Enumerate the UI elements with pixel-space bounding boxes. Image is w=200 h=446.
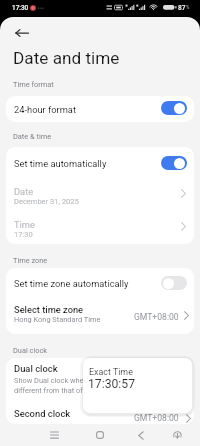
button[interactable]: Date xyxy=(6,179,194,212)
staticText: GMT+08:00 xyxy=(134,413,179,423)
staticText: Date xyxy=(14,186,34,197)
button[interactable]: 24-hour format xyxy=(6,96,194,122)
button[interactable]: Set time zone automatically xyxy=(6,268,194,298)
button[interactable]: Set time automatically xyxy=(6,147,194,179)
button[interactable]: Back xyxy=(131,425,151,445)
staticText: Dual clock xyxy=(13,346,48,355)
button[interactable]: Back xyxy=(11,22,32,43)
staticText: Select time zone xyxy=(14,304,84,315)
button[interactable]: Off xyxy=(161,276,187,290)
button[interactable]: Screenshot xyxy=(167,425,187,445)
staticText: Hong Kong Standard Time xyxy=(14,315,101,324)
staticText: 24-hour format xyxy=(14,104,76,115)
button[interactable]: Exact Time xyxy=(83,358,192,413)
staticText: Time xyxy=(14,219,35,230)
button[interactable]: Second clock xyxy=(6,404,194,424)
button[interactable]: Home xyxy=(90,425,110,445)
staticText: 17:30 xyxy=(12,4,29,12)
staticText: Time zone xyxy=(13,256,48,265)
staticText: Time format xyxy=(13,80,54,89)
staticText: Dual clock xyxy=(14,363,58,374)
button[interactable]: Time xyxy=(6,212,194,244)
button[interactable]: Select time zone xyxy=(6,298,194,334)
button[interactable]: Dual clock xyxy=(6,358,194,404)
staticText: Date & time xyxy=(13,132,52,141)
staticText: % xyxy=(186,5,190,10)
button[interactable]: Recents xyxy=(44,425,64,445)
staticText: GMT+08:00 xyxy=(134,312,179,322)
staticText: Set time automatically xyxy=(14,158,107,169)
staticText: 17:30 xyxy=(14,230,33,239)
button[interactable]: On xyxy=(161,156,187,170)
staticText: 17:30:57 xyxy=(88,377,136,391)
staticText: Exact Time xyxy=(89,367,133,377)
staticText: Date and time xyxy=(13,48,120,68)
staticText: Second clock xyxy=(14,408,71,419)
staticText: December 31, 2025 xyxy=(14,197,79,206)
button[interactable]: On xyxy=(161,101,187,115)
staticText: Set time zone automatically xyxy=(14,278,129,289)
staticText: 87 xyxy=(178,4,186,12)
staticText: Show Dual clock when in a region differe… xyxy=(14,376,125,395)
